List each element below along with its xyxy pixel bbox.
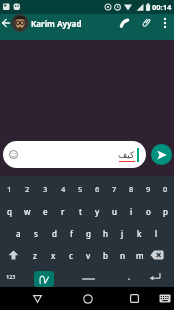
button[interactable]: o bbox=[140, 200, 157, 222]
button[interactable] bbox=[60, 266, 116, 287]
staticText: 7 bbox=[112, 184, 117, 194]
staticText: n bbox=[120, 250, 126, 261]
button[interactable]: v bbox=[80, 244, 97, 266]
staticText: 123 bbox=[6, 273, 16, 280]
button[interactable]: p bbox=[157, 200, 174, 222]
staticText: z bbox=[33, 250, 37, 261]
staticText: f bbox=[70, 228, 73, 239]
staticText: 1 bbox=[7, 184, 12, 194]
button[interactable]: a bbox=[9, 222, 27, 244]
button[interactable] bbox=[159, 14, 171, 32]
button[interactable] bbox=[81, 292, 94, 305]
staticText: 8 bbox=[129, 184, 134, 194]
button[interactable]: Karim Ayyad bbox=[31, 18, 82, 29]
staticText: i bbox=[130, 206, 133, 217]
staticText: 9 bbox=[146, 184, 151, 194]
staticText: a bbox=[16, 228, 21, 239]
button[interactable] bbox=[128, 292, 141, 305]
button[interactable]: w bbox=[18, 200, 36, 222]
button[interactable]: 5 bbox=[72, 178, 89, 200]
staticText: r bbox=[61, 206, 65, 217]
staticText: g bbox=[86, 228, 91, 239]
staticText: 3 bbox=[43, 184, 48, 194]
staticText: d bbox=[52, 228, 57, 239]
button[interactable]: 9 bbox=[140, 178, 157, 200]
button[interactable] bbox=[144, 266, 166, 287]
button[interactable]: 2 bbox=[18, 178, 36, 200]
staticText: h bbox=[103, 228, 109, 239]
button[interactable]: n bbox=[114, 244, 131, 266]
button[interactable]: q bbox=[0, 200, 18, 222]
button[interactable]: u bbox=[106, 200, 123, 222]
button[interactable]: e bbox=[36, 200, 54, 222]
staticText: e bbox=[43, 206, 48, 217]
staticText: Karim Ayyad bbox=[31, 18, 82, 29]
button[interactable]: f bbox=[63, 222, 80, 244]
button[interactable]: z bbox=[26, 244, 44, 266]
staticText: w bbox=[24, 206, 31, 217]
button[interactable]: s bbox=[27, 222, 45, 244]
button[interactable]: t bbox=[72, 200, 89, 222]
button[interactable]: 8 bbox=[123, 178, 140, 200]
button[interactable]: 6 bbox=[89, 178, 106, 200]
button[interactable]: h bbox=[97, 222, 114, 244]
button[interactable] bbox=[157, 292, 172, 305]
button[interactable]: 4 bbox=[54, 178, 72, 200]
button[interactable]: 3 bbox=[36, 178, 54, 200]
button[interactable]: 123 bbox=[2, 266, 20, 287]
button[interactable]: كيف bbox=[3, 141, 146, 168]
staticText: x bbox=[51, 250, 56, 261]
staticText: u bbox=[112, 206, 118, 217]
button[interactable]: k bbox=[131, 222, 148, 244]
button[interactable] bbox=[117, 14, 131, 32]
staticText: 0 bbox=[163, 184, 168, 194]
staticText: p bbox=[163, 206, 168, 217]
staticText: b bbox=[103, 250, 108, 261]
staticText: c bbox=[69, 250, 73, 261]
button[interactable]: r bbox=[54, 200, 72, 222]
button[interactable] bbox=[151, 144, 172, 165]
staticText: l bbox=[155, 228, 158, 239]
staticText: 5 bbox=[78, 184, 83, 194]
staticText: s bbox=[34, 228, 38, 239]
staticText: 4 bbox=[61, 184, 66, 194]
button[interactable]: l bbox=[148, 222, 165, 244]
staticText: y bbox=[95, 206, 100, 217]
button[interactable] bbox=[0, 244, 26, 266]
button[interactable]: y bbox=[89, 200, 106, 222]
button[interactable]: d bbox=[45, 222, 63, 244]
button[interactable]: 7 bbox=[106, 178, 123, 200]
staticText: 00:14 bbox=[152, 2, 172, 12]
staticText: t bbox=[79, 206, 83, 217]
button[interactable]: 0 bbox=[157, 178, 174, 200]
button[interactable]: b bbox=[97, 244, 114, 266]
button[interactable] bbox=[34, 271, 54, 287]
staticText: 2 bbox=[25, 184, 30, 194]
staticText: m bbox=[136, 250, 144, 261]
staticText: v bbox=[86, 250, 91, 261]
button[interactable] bbox=[31, 292, 44, 305]
staticText: كيف bbox=[118, 150, 135, 160]
staticText: o bbox=[146, 206, 151, 217]
staticText: 6 bbox=[95, 184, 100, 194]
button[interactable] bbox=[0, 14, 29, 32]
button[interactable]: 1 bbox=[0, 178, 18, 200]
staticText: j bbox=[121, 228, 124, 239]
button[interactable]: i bbox=[123, 200, 140, 222]
button[interactable]: j bbox=[114, 222, 131, 244]
button[interactable] bbox=[140, 14, 153, 32]
staticText: k bbox=[137, 228, 142, 239]
button[interactable]: . bbox=[121, 266, 137, 287]
button[interactable] bbox=[148, 244, 166, 266]
staticText: . bbox=[128, 271, 131, 282]
staticText: q bbox=[7, 206, 12, 217]
button[interactable]: g bbox=[80, 222, 97, 244]
button[interactable]: m bbox=[131, 244, 148, 266]
button[interactable]: x bbox=[44, 244, 62, 266]
button[interactable]: c bbox=[62, 244, 80, 266]
